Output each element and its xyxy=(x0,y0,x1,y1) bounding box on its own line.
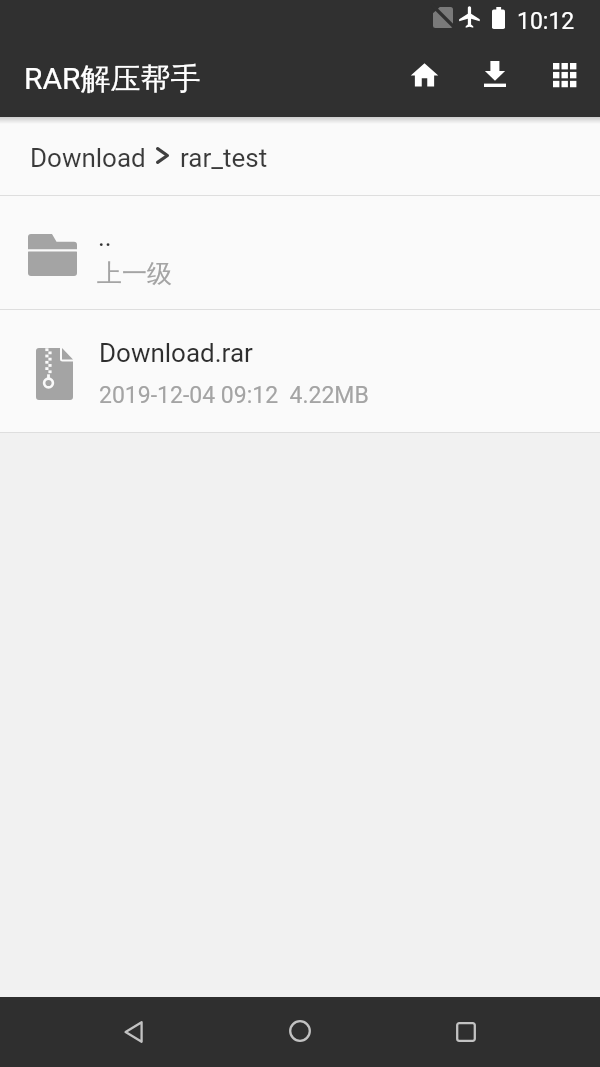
staticText: .. xyxy=(98,222,112,252)
button[interactable]: rar_test xyxy=(180,141,268,171)
button[interactable]: Download.rar xyxy=(0,310,600,432)
button[interactable]: .. xyxy=(0,196,600,309)
staticText: 10:12 xyxy=(517,8,575,35)
button[interactable] xyxy=(289,1020,311,1042)
button[interactable] xyxy=(124,1021,143,1043)
staticText: 2019-12-04 09:12 4.22MB xyxy=(99,382,369,409)
staticText: 上一级 xyxy=(97,258,172,289)
button[interactable] xyxy=(456,1022,476,1042)
staticText: rar_test xyxy=(180,143,268,173)
staticText: Download.rar xyxy=(99,338,253,368)
button[interactable] xyxy=(553,63,576,87)
staticText: Download xyxy=(30,143,146,173)
button[interactable] xyxy=(408,59,441,92)
button[interactable]: Download xyxy=(30,141,146,171)
button[interactable] xyxy=(484,61,506,87)
staticText: RAR解压帮手 xyxy=(24,60,201,98)
